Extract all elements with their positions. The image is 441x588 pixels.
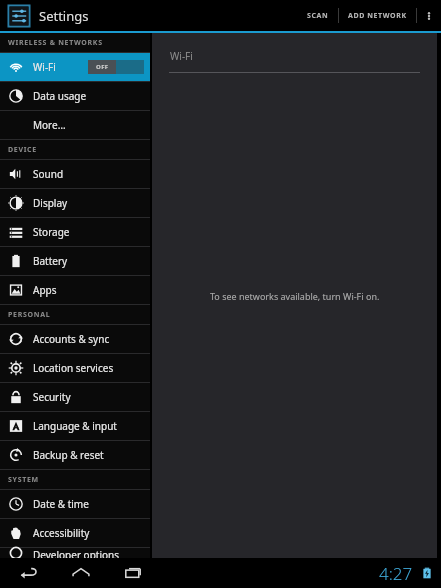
staticText: OFF [96,63,109,71]
button[interactable]: Accounts & sync [0,325,150,353]
button[interactable]: Recent apps [112,558,154,588]
staticText: Storage [33,225,70,239]
button[interactable]: Security [0,383,150,411]
button[interactable]: Accessibility [0,519,150,547]
button[interactable]: Storage [0,218,150,246]
button[interactable]: Settings app [6,3,32,29]
button[interactable]: Back [8,558,50,588]
button[interactable]: Language & input [0,412,150,440]
staticText: 4:27 [379,562,413,585]
button[interactable]: Battery [0,247,150,275]
button[interactable]: Apps [0,276,150,304]
button[interactable]: Wi-Fi [0,53,150,81]
button[interactable]: Developer options [0,548,150,558]
staticText: Display [33,196,68,210]
staticText: Security [33,390,71,404]
staticText: SCAN [307,11,329,21]
button[interactable]: Date & time [0,490,150,518]
staticText: Wi-Fi [170,49,193,63]
button[interactable]: More… [0,111,150,139]
button[interactable]: More options [417,0,441,31]
staticText: SYSTEM [8,475,39,485]
staticText: Sound [33,167,64,181]
staticText: WIRELESS & NETWORKS [8,38,103,48]
button[interactable]: Location services [0,354,150,382]
staticText: Date & time [33,497,89,511]
staticText: Location services [33,361,114,375]
staticText: Backup & reset [33,448,104,462]
staticText: Battery [33,254,68,268]
button[interactable]: Display [0,189,150,217]
button[interactable]: ADD NETWORK [339,3,416,29]
staticText: Data usage [33,89,87,103]
staticText: DEVICE [8,145,37,155]
button[interactable]: Home [60,558,102,588]
button[interactable]: Backup & reset [0,441,150,469]
staticText: Language & input [33,419,117,433]
staticText: Wi-Fi [33,60,56,74]
button[interactable]: Data usage [0,82,150,110]
button[interactable]: Battery charging [419,565,435,581]
button[interactable]: SCAN [298,3,338,29]
staticText: Settings [39,7,89,25]
staticText: Apps [33,283,57,297]
staticText: Developer options [33,548,120,558]
staticText: Accounts & sync [33,332,110,346]
staticText: Accessibility [33,526,90,540]
staticText: ADD NETWORK [348,11,407,21]
staticText: More… [33,118,66,132]
staticText: PERSONAL [8,310,51,320]
staticText: To see networks available, turn Wi-Fi on… [210,290,380,302]
button[interactable]: Sound [0,160,150,188]
